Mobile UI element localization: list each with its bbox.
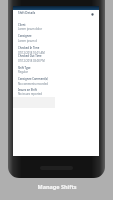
staticText: Manage Shifts <box>37 183 77 190</box>
staticText: No comments recorded <box>18 82 48 86</box>
staticText: Shift Details <box>18 11 36 15</box>
staticText: Regular <box>18 70 28 74</box>
staticText: Checked In Time <box>18 46 40 50</box>
staticText: Consignee Comment(s) <box>18 77 48 81</box>
staticText: Lorem ipsum d <box>18 39 37 43</box>
staticText: Checked Out Time <box>18 54 42 58</box>
button[interactable]: More options <box>88 10 97 19</box>
staticText: No issues reported <box>18 92 42 96</box>
staticText: Issues on Shift <box>18 88 37 92</box>
staticText: Lorem ipsum dolor <box>18 27 43 31</box>
button[interactable]: Shift Details <box>13 8 99 17</box>
staticText: Shift Type <box>18 66 31 70</box>
staticText: 07/12/2018 03:00 PM <box>18 59 45 63</box>
staticText: Client <box>18 23 26 27</box>
staticText: 07/12/2018 10:01 AM <box>18 51 45 55</box>
staticText: Consignee <box>18 34 32 38</box>
